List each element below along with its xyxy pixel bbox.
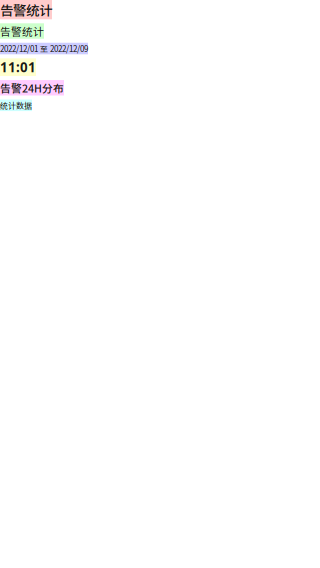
staticText: 告警统计: [0, 0, 52, 19]
staticText: 告警统计: [0, 23, 44, 39]
staticText: 2022/12/01 至 2022/12/09: [0, 43, 88, 54]
staticText: 11:01: [0, 58, 36, 76]
staticText: 统计数据: [0, 99, 32, 111]
staticText: 告警24H分布: [0, 80, 64, 95]
